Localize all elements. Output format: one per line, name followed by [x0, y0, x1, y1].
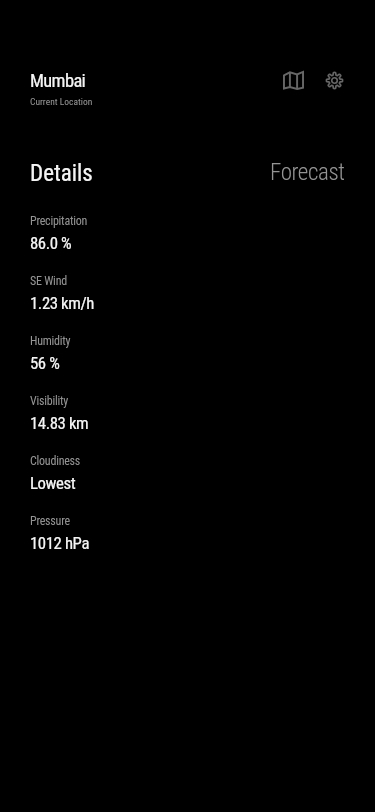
staticText: Forecast: [270, 159, 345, 186]
staticText: 1012 hPa: [30, 533, 90, 553]
staticText: Mumbai: [30, 70, 86, 92]
staticText: SE Wind: [30, 274, 67, 288]
staticText: Current Location: [30, 96, 93, 107]
button[interactable]: SE Wind: [30, 274, 375, 313]
staticText: Precipitation: [30, 214, 88, 228]
button[interactable]: Pressure: [30, 514, 375, 553]
staticText: 1.23 km/h: [30, 293, 94, 313]
staticText: Visibility: [30, 394, 69, 408]
staticText: Details: [30, 160, 93, 187]
staticText: 56 %: [30, 353, 60, 373]
staticText: Pressure: [30, 514, 70, 528]
staticText: Lowest: [30, 473, 76, 493]
staticText: 14.83 km: [30, 413, 89, 433]
button[interactable]: Map: [277, 64, 309, 96]
button[interactable]: Visibility: [30, 394, 375, 433]
button[interactable]: Precipitation: [30, 214, 375, 253]
button[interactable]: Forecast: [270, 159, 345, 186]
staticText: Humidity: [30, 334, 71, 348]
button[interactable]: Humidity: [30, 334, 375, 373]
button[interactable]: Settings: [318, 64, 350, 96]
button[interactable]: Details: [30, 160, 93, 187]
staticText: 86.0 %: [30, 233, 72, 253]
button[interactable]: Cloudiness: [30, 454, 375, 493]
staticText: Cloudiness: [30, 454, 81, 468]
button[interactable]: Mumbai: [30, 70, 86, 92]
